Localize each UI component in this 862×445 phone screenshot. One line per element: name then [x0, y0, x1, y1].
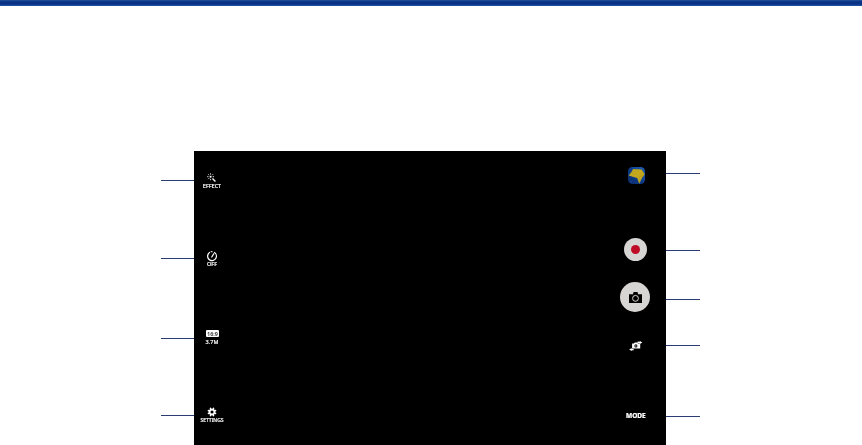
- button[interactable]: Record video: [624, 238, 647, 261]
- staticText: MODE: [626, 411, 646, 420]
- button[interactable]: Take picture: [620, 282, 650, 312]
- button[interactable]: Picture size 16:9 3.7M: [192, 328, 232, 345]
- button[interactable]: Gallery: [628, 167, 645, 184]
- staticText: SETTINGS: [192, 417, 232, 424]
- staticText: 16:9: [207, 330, 218, 337]
- button[interactable]: MODE: [620, 409, 652, 422]
- staticText: 3.7M: [192, 338, 232, 345]
- staticText: OFF: [192, 260, 232, 267]
- button[interactable]: Effect: [192, 170, 232, 189]
- button[interactable]: Switch camera: [628, 338, 646, 354]
- button[interactable]: Settings: [192, 405, 232, 424]
- staticText: EFFECT: [192, 182, 232, 189]
- button[interactable]: Timer Off: [192, 249, 232, 267]
